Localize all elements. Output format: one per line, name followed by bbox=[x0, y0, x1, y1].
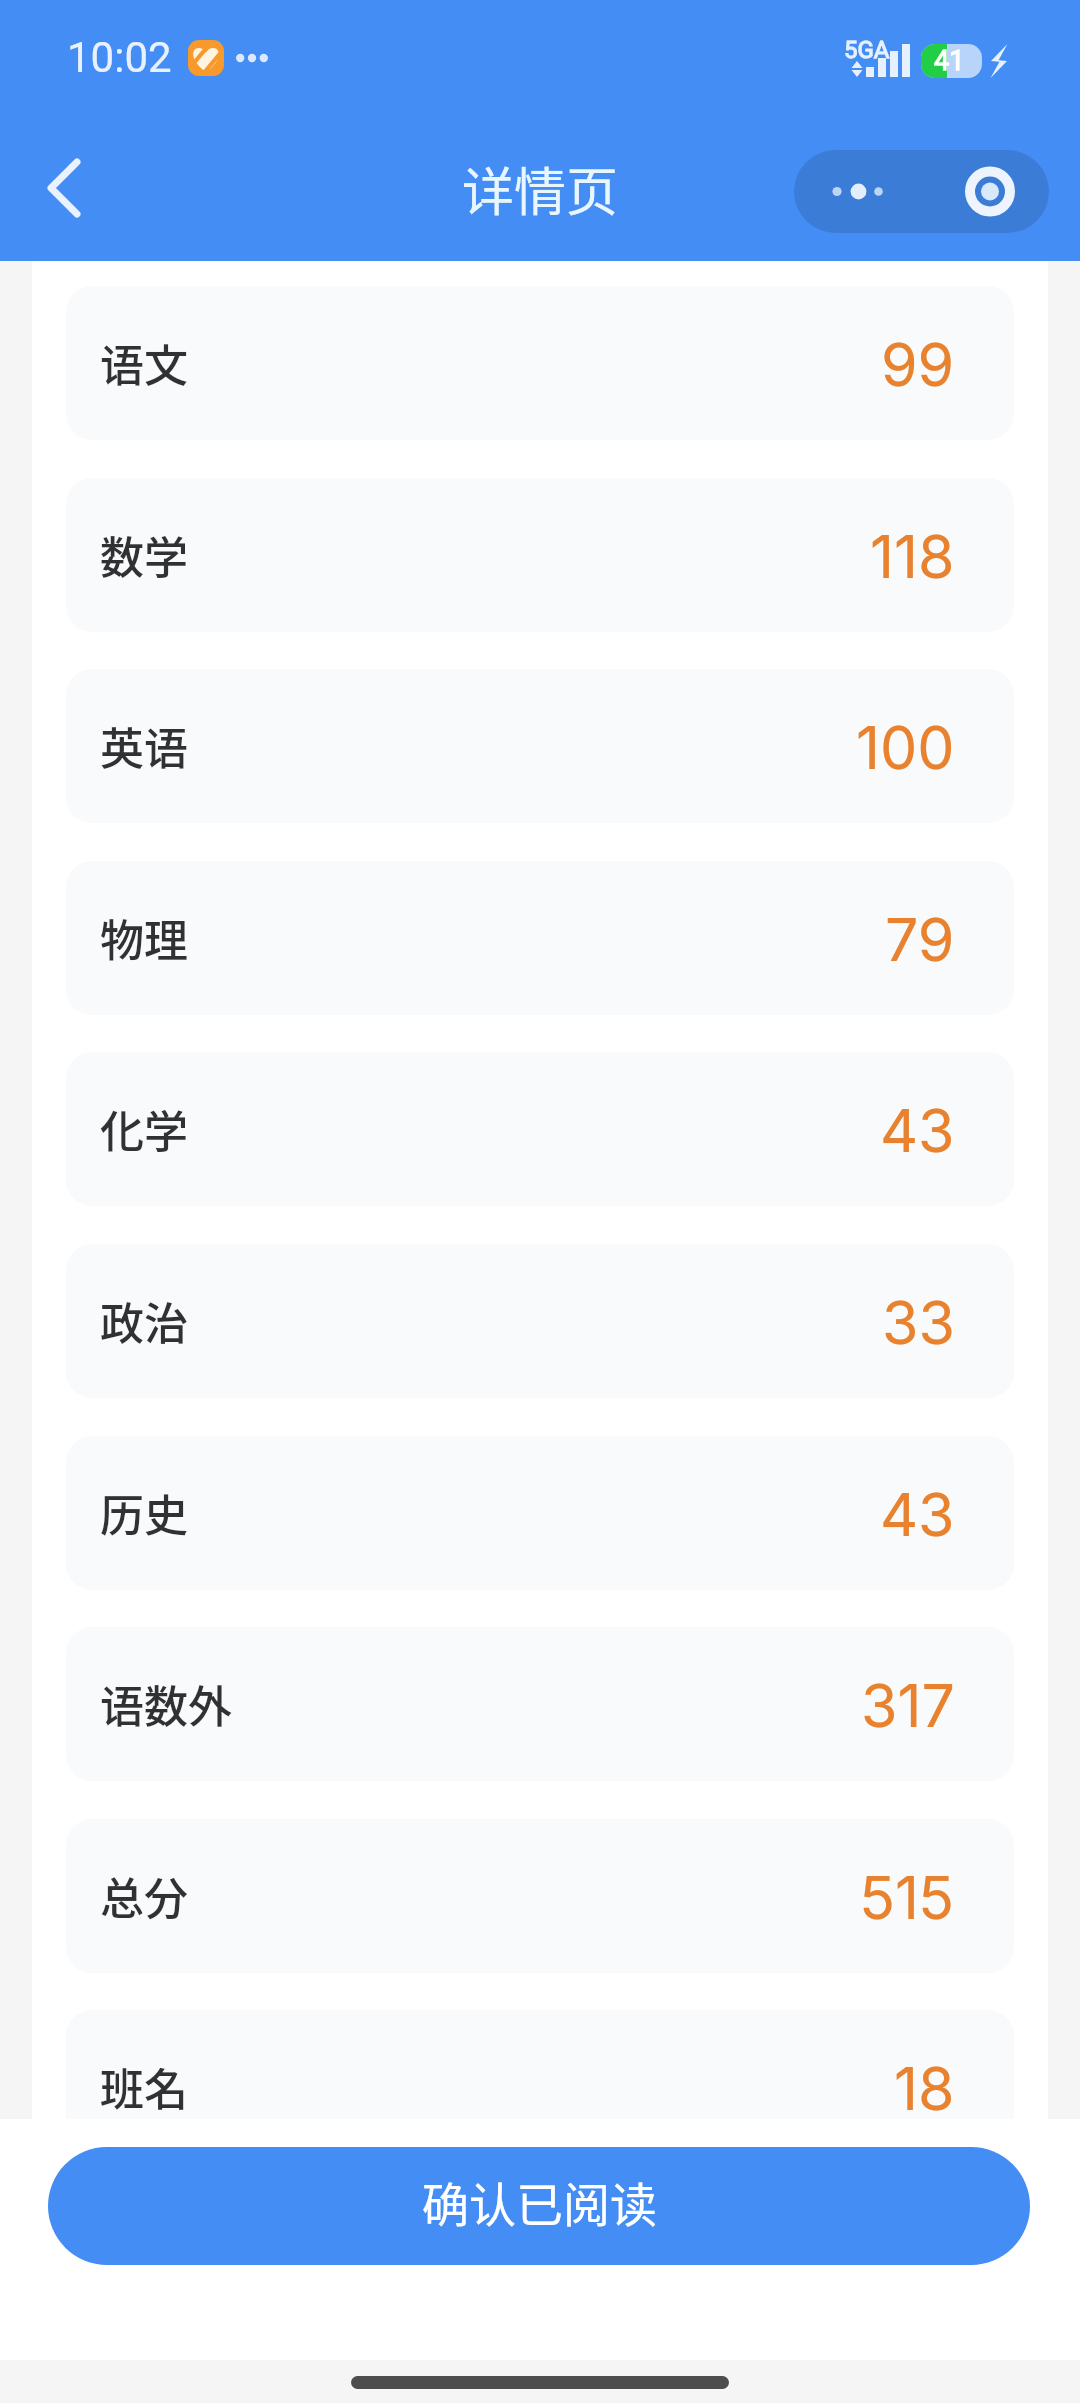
staticText: 5GA bbox=[844, 36, 890, 64]
button[interactable]: 政治 bbox=[66, 1244, 1014, 1398]
staticText: 10:02 bbox=[67, 33, 172, 82]
button[interactable]: 数学 bbox=[66, 478, 1014, 632]
staticText: 历史 bbox=[100, 1481, 188, 1545]
button[interactable]: 语数外 bbox=[66, 1627, 1014, 1781]
button[interactable]: 确认已阅读 bbox=[48, 2147, 1030, 2265]
staticText: 118 bbox=[870, 521, 955, 592]
staticText: 物理 bbox=[100, 906, 188, 970]
staticText: 详情页 bbox=[462, 151, 619, 226]
staticText: 总分 bbox=[100, 1864, 188, 1928]
staticText: 政治 bbox=[100, 1289, 188, 1353]
staticText: 33 bbox=[882, 1287, 955, 1358]
staticText: 班名 bbox=[100, 2055, 188, 2119]
button[interactable]: 班名 bbox=[66, 2010, 1014, 2119]
button[interactable]: More options bbox=[794, 150, 922, 233]
button[interactable]: 历史 bbox=[66, 1436, 1014, 1590]
staticText: 100 bbox=[856, 712, 955, 783]
staticText: 数学 bbox=[100, 523, 188, 587]
button[interactable]: Close mini program bbox=[922, 150, 1049, 233]
staticText: 79 bbox=[885, 904, 955, 975]
staticText: 41 bbox=[934, 45, 965, 77]
staticText: 英语 bbox=[100, 714, 188, 778]
staticText: 化学 bbox=[100, 1097, 188, 1161]
button[interactable]: 化学 bbox=[66, 1052, 1014, 1206]
button[interactable]: 语文 bbox=[66, 286, 1014, 440]
button[interactable]: 总分 bbox=[66, 1819, 1014, 1973]
staticText: 317 bbox=[861, 1670, 955, 1741]
staticText: 43 bbox=[880, 1479, 955, 1550]
staticText: 18 bbox=[894, 2053, 955, 2119]
staticText: 语文 bbox=[100, 331, 188, 395]
staticText: 515 bbox=[860, 1862, 955, 1933]
staticText: 43 bbox=[880, 1095, 955, 1166]
button[interactable]: Back bbox=[16, 140, 112, 236]
staticText: 确认已阅读 bbox=[422, 2167, 657, 2235]
button[interactable]: 英语 bbox=[66, 669, 1014, 823]
staticText: 语数外 bbox=[100, 1672, 232, 1736]
staticText: 99 bbox=[881, 329, 955, 400]
button[interactable]: 物理 bbox=[66, 861, 1014, 1015]
